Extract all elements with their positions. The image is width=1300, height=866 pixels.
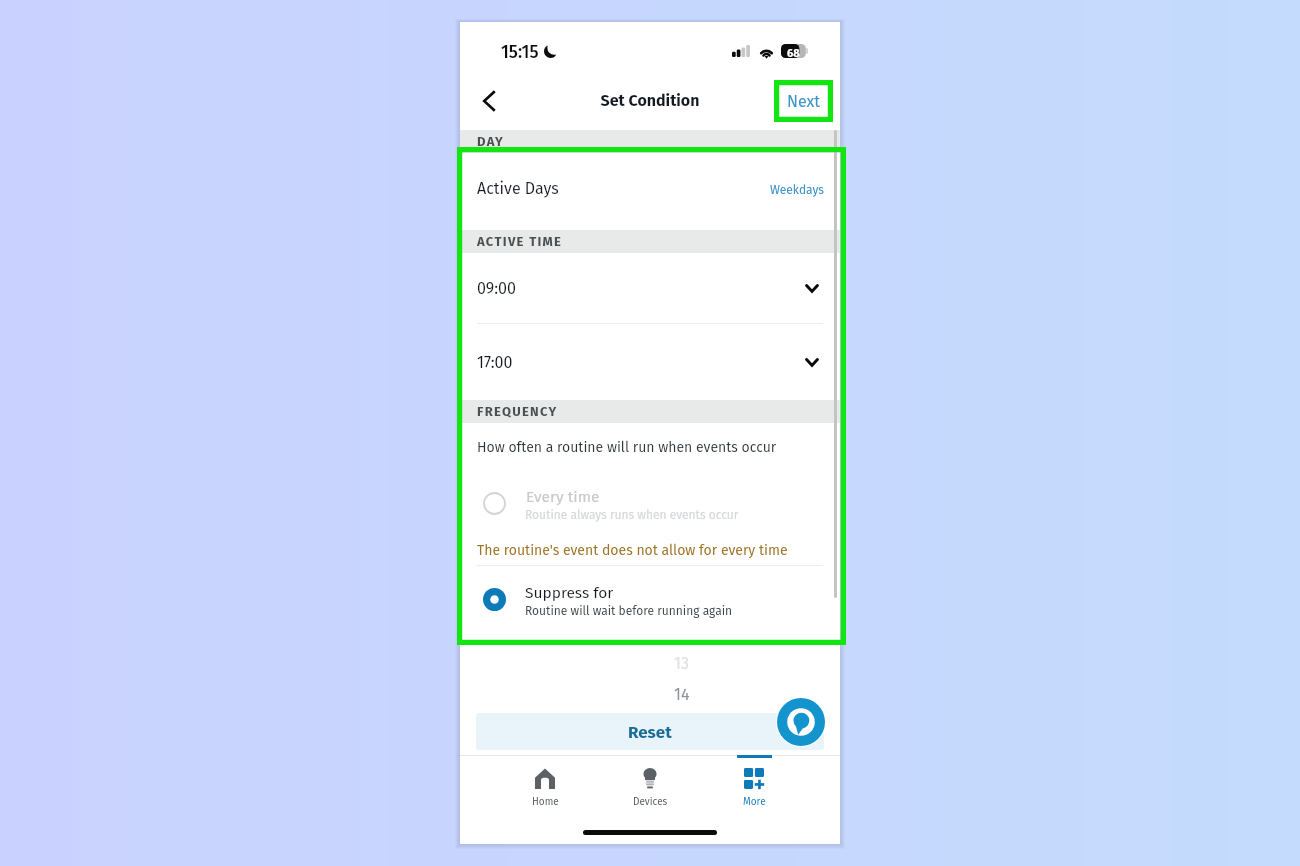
staticText: Reset [628,722,672,742]
staticText: Suppress for [525,584,614,603]
staticText: Active Days [477,179,559,198]
staticText: Weekdays [770,183,824,197]
button[interactable]: Home [513,755,577,811]
staticText: 13 [674,654,689,673]
staticText: 15:15 [501,42,539,63]
button[interactable]: Devices [618,755,682,811]
button[interactable]: 17:00 [460,324,840,400]
button[interactable]: Back [475,87,503,115]
staticText: 68 [787,47,800,60]
staticText: Routine will wait before running again [525,604,733,618]
button[interactable]: Active Days [460,153,840,230]
staticText: More [743,796,766,808]
staticText: 09:00 [477,279,516,298]
staticText: Devices [633,796,668,808]
staticText: Every time [526,488,600,507]
button[interactable]: More [722,755,786,811]
staticText: DAY [477,134,504,150]
staticText: Home [532,796,559,808]
staticText: FREQUENCY [477,404,558,420]
staticText: The routine's event does not allow for e… [477,542,788,559]
button[interactable]: 09:00 [460,253,840,323]
staticText: 17:00 [477,353,513,372]
button[interactable]: Reset [476,713,824,750]
staticText: Next [787,92,821,111]
button[interactable]: Next [782,84,826,118]
button[interactable]: Alexa [776,697,826,747]
staticText: ACTIVE TIME [477,234,563,250]
staticText: How often a routine will run when events… [477,439,777,456]
staticText: 14 [674,685,690,704]
staticText: Set Condition [460,91,840,110]
staticText: Routine always runs when events occur [525,508,739,522]
